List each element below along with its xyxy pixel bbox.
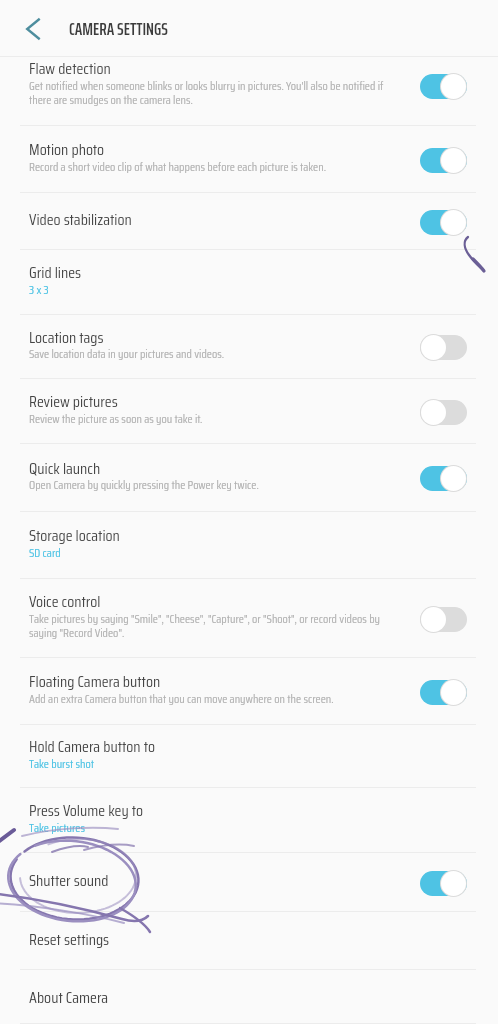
button[interactable]: Switch off (419, 395, 467, 429)
button[interactable]: Motion photo (0, 126, 498, 193)
button[interactable]: Switch off (419, 330, 467, 364)
staticText: Reset settings (29, 927, 110, 952)
staticText: Location tags (29, 325, 104, 350)
staticText: Floating Camera button (29, 669, 161, 694)
button[interactable]: Switch on (419, 461, 467, 495)
staticText: Record a short video clip of what happen… (29, 157, 326, 176)
staticText: Press Volume key to (29, 798, 144, 823)
staticText: Review pictures (29, 389, 118, 414)
staticText: Add an extra Camera button that you can … (29, 689, 334, 708)
staticText: About Camera (29, 985, 109, 1010)
button[interactable]: Quick launch (0, 444, 498, 512)
staticText: Open Camera by quickly pressing the Powe… (29, 475, 259, 494)
button[interactable]: Reset settings (0, 912, 498, 970)
button[interactable]: Review pictures (0, 379, 498, 444)
staticText: Flaw detection (29, 56, 111, 81)
staticText: SD card (29, 543, 61, 562)
button[interactable]: Floating Camera button (0, 658, 498, 725)
button[interactable]: Switch on (419, 675, 467, 709)
button[interactable]: Grid lines (0, 250, 498, 315)
staticText: Review the picture as soon as you take i… (29, 409, 203, 428)
staticText: CAMERA SETTINGS (69, 15, 168, 43)
staticText: Video stabilization (29, 207, 132, 232)
button[interactable]: Back (9, 5, 57, 53)
button[interactable]: Switch on (419, 69, 467, 103)
staticText: Voice control (29, 589, 101, 614)
button[interactable]: Flaw detection (0, 57, 498, 126)
button[interactable]: Location tags (0, 315, 498, 379)
staticText: Grid lines (29, 260, 82, 285)
staticText: Take pictures (29, 818, 85, 837)
button[interactable]: About Camera (0, 970, 498, 1024)
button[interactable]: Switch on (419, 866, 467, 900)
button[interactable]: Press Volume key to (0, 788, 498, 853)
staticText: Get notified when someone blinks or look… (29, 76, 384, 109)
staticText: Take pictures by saying "Smile", "Cheese… (29, 609, 380, 642)
staticText: Storage location (29, 523, 120, 548)
staticText: 3 x 3 (29, 280, 49, 299)
staticText: Quick launch (29, 456, 101, 481)
staticText: Motion photo (29, 137, 105, 162)
button[interactable]: Storage location (0, 512, 498, 579)
button[interactable]: Switch on (419, 143, 467, 177)
button[interactable]: Voice control (0, 579, 498, 658)
button[interactable]: Video stabilization (0, 193, 498, 250)
staticText: Shutter sound (29, 868, 109, 893)
button[interactable]: Switch off (419, 602, 467, 636)
button[interactable]: Shutter sound (0, 853, 498, 912)
staticText: Save location data in your pictures and … (29, 344, 225, 363)
staticText: Take burst shot (29, 754, 95, 773)
button[interactable]: Switch on (419, 205, 467, 239)
button[interactable]: Hold Camera button to (0, 725, 498, 788)
staticText: Hold Camera button to (29, 734, 155, 759)
